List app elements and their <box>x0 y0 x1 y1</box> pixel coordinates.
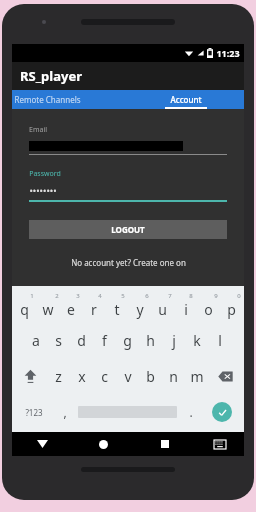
button[interactable]: 5 <box>105 288 128 323</box>
button[interactable]: m <box>185 358 208 394</box>
button[interactable]: . <box>180 394 201 430</box>
staticText: f <box>102 331 107 350</box>
staticText: v <box>124 367 132 386</box>
staticText: 6 <box>145 292 149 300</box>
button[interactable]: n <box>162 358 185 394</box>
button[interactable]: 4 <box>82 288 105 323</box>
button[interactable]: Backspace <box>208 358 243 394</box>
button[interactable]: 1 <box>13 288 36 323</box>
staticText: b <box>146 367 155 386</box>
staticText: . <box>189 404 193 420</box>
staticText: Account <box>170 94 202 105</box>
staticText: 5 <box>121 292 125 300</box>
staticText: n <box>169 367 178 386</box>
button[interactable]: z <box>47 358 70 394</box>
staticText: Remote Channels <box>14 94 81 105</box>
button[interactable]: d <box>70 323 93 358</box>
button[interactable]: g <box>116 323 139 358</box>
button[interactable]: k <box>185 323 208 358</box>
staticText: x <box>78 367 86 386</box>
staticText: m <box>190 367 204 386</box>
button[interactable]: 2 <box>36 288 59 323</box>
button[interactable]: h <box>139 323 162 358</box>
button[interactable]: Home <box>73 432 134 456</box>
staticText: q <box>20 300 29 319</box>
staticText: 11:23 <box>216 47 240 59</box>
button[interactable]: 0 <box>220 288 243 323</box>
button[interactable]: a <box>24 323 47 358</box>
staticText: •••••••• <box>29 184 57 196</box>
staticText: e <box>67 300 75 319</box>
staticText: k <box>193 331 201 350</box>
staticText: a <box>32 331 40 350</box>
staticText: 3 <box>76 292 80 300</box>
button[interactable]: LOGOUT <box>29 220 227 239</box>
staticText: l <box>218 331 222 350</box>
staticText: Password <box>29 169 61 179</box>
button[interactable]: s <box>47 323 70 358</box>
staticText: No account yet? Create one on <box>71 257 186 268</box>
button[interactable]: , <box>54 394 75 430</box>
button[interactable]: Enter <box>212 402 232 422</box>
button[interactable]: 9 <box>197 288 220 323</box>
staticText: c <box>101 367 108 386</box>
button[interactable]: l <box>208 323 231 358</box>
button[interactable]: c <box>93 358 116 394</box>
button[interactable]: Remote Channels <box>12 90 128 109</box>
staticText: s <box>55 331 62 350</box>
staticText: LOGOUT <box>111 224 145 235</box>
staticText: 2 <box>55 292 59 300</box>
staticText: r <box>91 300 97 319</box>
staticText: o <box>204 300 213 319</box>
button[interactable]: Shift <box>13 358 47 394</box>
staticText: 9 <box>214 292 218 300</box>
staticText: Email <box>29 125 47 135</box>
button[interactable]: f <box>93 323 116 358</box>
button[interactable]: 7 <box>151 288 174 323</box>
staticText: j <box>172 331 176 350</box>
staticText: w <box>42 300 54 319</box>
button[interactable]: ?123 <box>13 394 54 430</box>
staticText: u <box>158 300 167 319</box>
staticText: t <box>114 300 120 319</box>
button[interactable]: Hide keyboard <box>12 432 73 456</box>
button[interactable]: 8 <box>174 288 197 323</box>
staticText: , <box>63 404 67 420</box>
staticText: g <box>123 331 132 350</box>
staticText: 0 <box>237 292 241 300</box>
staticText: i <box>184 300 188 319</box>
staticText: 4 <box>98 292 102 300</box>
button[interactable]: x <box>70 358 93 394</box>
staticText: RS_player <box>20 67 82 85</box>
button[interactable]: Switch keyboard <box>195 432 244 456</box>
staticText: 1 <box>30 292 34 300</box>
button[interactable]: Account <box>128 90 244 109</box>
staticText: 7 <box>168 292 172 300</box>
button[interactable]: j <box>162 323 185 358</box>
button[interactable]: 6 <box>128 288 151 323</box>
button[interactable]: v <box>116 358 139 394</box>
button[interactable]: No account yet? Create one on <box>29 257 227 268</box>
staticText: y <box>136 300 144 319</box>
staticText: p <box>227 300 236 319</box>
staticText: z <box>55 367 62 386</box>
button[interactable]: b <box>139 358 162 394</box>
staticText: d <box>77 331 86 350</box>
staticText: ?123 <box>25 407 43 418</box>
button[interactable]: 3 <box>59 288 82 323</box>
staticText: 8 <box>189 292 193 300</box>
staticText: h <box>146 331 155 350</box>
button[interactable]: Recents <box>134 432 195 456</box>
